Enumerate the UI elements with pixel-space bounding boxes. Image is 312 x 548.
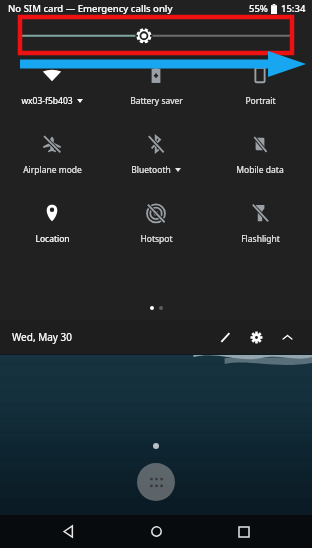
button[interactable]: Brightness slider [0, 16, 312, 54]
button[interactable]: Home [136, 515, 176, 548]
staticText: Flashlight [241, 233, 280, 245]
staticText: Bluetooth [131, 164, 171, 176]
button[interactable]: Location [0, 200, 104, 247]
button[interactable]: All apps [137, 463, 175, 501]
button[interactable]: Flashlight [208, 200, 312, 247]
button[interactable]: wx03-f5b403 [0, 62, 104, 109]
staticText: Portrait [245, 95, 276, 107]
button[interactable]: Mobile data [208, 131, 312, 178]
button[interactable]: Bluetooth [104, 131, 208, 178]
staticText: Mobile data [236, 164, 284, 176]
button[interactable]: Settings [243, 324, 269, 350]
staticText: 55% [249, 2, 268, 15]
button[interactable]: Collapse [274, 324, 300, 350]
staticText: Wed, May 30 [12, 330, 72, 344]
button[interactable]: Edit [212, 324, 238, 350]
staticText: No SIM card — Emergency calls only [8, 2, 173, 15]
staticText: 15:34 [281, 2, 306, 15]
staticText: Hotspot [140, 233, 173, 245]
button[interactable]: Hotspot [104, 200, 208, 247]
staticText: Location [35, 233, 70, 245]
staticText: wx03-f5b403 [21, 95, 73, 107]
button[interactable]: Battery saver [104, 62, 208, 109]
staticText: Airplane mode [23, 164, 82, 176]
button[interactable]: Airplane mode [0, 131, 104, 178]
button[interactable]: Portrait [208, 62, 312, 109]
button[interactable]: Back [48, 515, 88, 548]
staticText: Battery saver [130, 95, 183, 107]
button[interactable]: Recent apps [224, 515, 264, 548]
